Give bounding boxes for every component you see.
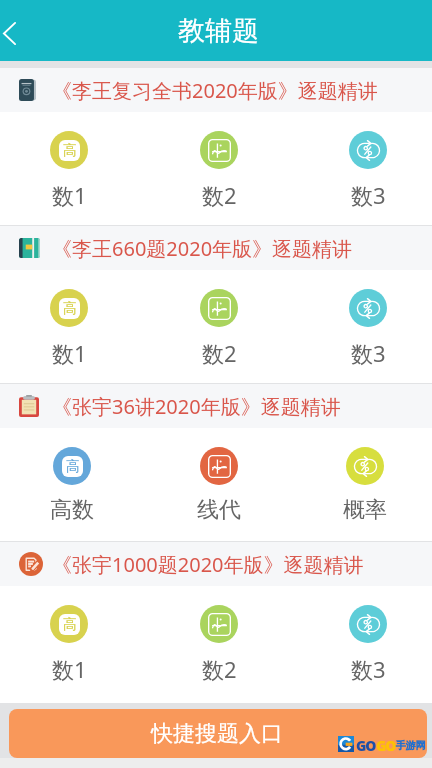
button[interactable]: 数3 xyxy=(349,270,387,368)
button[interactable]: 高 xyxy=(50,586,88,684)
staticText: GO xyxy=(376,736,396,755)
button[interactable]: 《张宇36讲2020年版》逐题精讲 xyxy=(0,384,432,428)
staticText: 《张宇36讲2020年版》逐题精讲 xyxy=(52,393,341,420)
button[interactable]: 线代 xyxy=(197,428,241,524)
button[interactable]: 数2 xyxy=(200,270,238,368)
staticText: 数3 xyxy=(351,338,386,368)
staticText: 高 xyxy=(63,142,77,160)
staticText: 《张宇1000题2020年版》逐题精讲 xyxy=(52,551,364,578)
button[interactable]: 数2 xyxy=(200,586,238,684)
button[interactable]: 《李王660题2020年版》逐题精讲 xyxy=(0,226,432,270)
staticText: 数2 xyxy=(202,338,237,368)
staticText: 《李王复习全书2020年版》逐题精讲 xyxy=(52,77,378,104)
button[interactable]: 数3 xyxy=(349,586,387,684)
button[interactable]: 《张宇1000题2020年版》逐题精讲 xyxy=(0,542,432,586)
staticText: 数1 xyxy=(52,338,87,368)
staticText: 数1 xyxy=(52,654,87,684)
staticText: 高 xyxy=(63,300,77,318)
button[interactable]: 高 xyxy=(50,428,94,524)
staticText: 数2 xyxy=(202,654,237,684)
staticText: 概率 xyxy=(343,496,387,524)
button[interactable]: 概率 xyxy=(343,428,387,524)
staticText: 手游网 xyxy=(396,739,426,752)
staticText: 《李王660题2020年版》逐题精讲 xyxy=(52,235,353,262)
button[interactable]: Back xyxy=(0,3,34,59)
staticText: 数2 xyxy=(202,180,237,210)
staticText: 数1 xyxy=(52,180,87,210)
staticText: GO xyxy=(356,736,376,755)
staticText: 高 xyxy=(63,616,77,634)
staticText: 高 xyxy=(66,458,80,476)
staticText: 数3 xyxy=(351,180,386,210)
staticText: 教辅题 xyxy=(178,14,259,48)
button[interactable]: 《李王复习全书2020年版》逐题精讲 xyxy=(0,68,432,112)
staticText: 高数 xyxy=(50,496,94,524)
button[interactable]: 快捷搜题入口 xyxy=(9,709,427,758)
button[interactable]: 数3 xyxy=(349,112,387,210)
button[interactable]: 高 xyxy=(50,270,88,368)
staticText: 数3 xyxy=(351,654,386,684)
button[interactable]: 数2 xyxy=(200,112,238,210)
button[interactable]: 高 xyxy=(50,112,88,210)
staticText: 快捷搜题入口 xyxy=(151,720,283,748)
staticText: 线代 xyxy=(197,496,241,524)
